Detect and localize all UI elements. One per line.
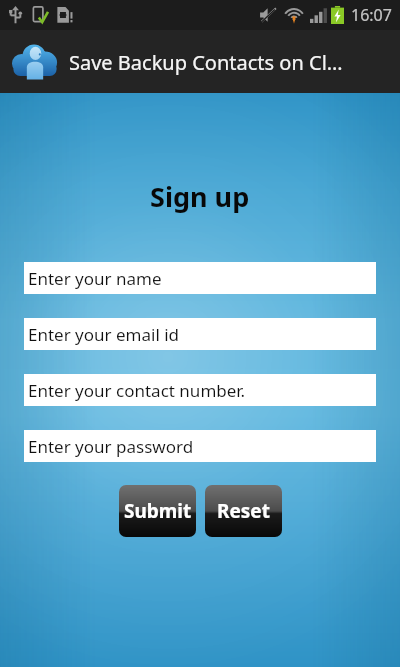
button[interactable]: Enter your email id <box>24 318 376 350</box>
other: App icon <box>11 42 59 82</box>
staticText: Enter your password <box>28 435 194 458</box>
staticText: Enter your contact number. <box>28 379 246 402</box>
button[interactable]: Enter your name <box>24 262 376 294</box>
staticText: Reset <box>217 498 270 524</box>
staticText: Enter your name <box>28 267 162 290</box>
staticText: Save Backup Contacts on Cl… <box>69 49 343 76</box>
button[interactable]: Enter your contact number. <box>24 374 376 406</box>
button[interactable]: Enter your password <box>24 430 376 462</box>
button[interactable]: Submit <box>119 485 196 537</box>
staticText: 16:07 <box>351 4 392 26</box>
button[interactable]: Reset <box>205 485 282 537</box>
staticText: Enter your email id <box>28 323 180 346</box>
staticText: Submit <box>124 498 192 524</box>
staticText: Sign up <box>150 178 250 215</box>
